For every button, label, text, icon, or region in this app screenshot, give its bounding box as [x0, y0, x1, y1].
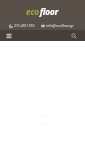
- button[interactable]: info@ecofloor.gr: [41, 23, 74, 28]
- staticText: info@ecofloor.gr: [46, 23, 74, 28]
- button[interactable]: Search: [69, 31, 78, 40]
- button[interactable]: Menu: [4, 31, 13, 40]
- button[interactable]: 211-4011010: [9, 23, 35, 28]
- staticText: 211-4011010: [14, 23, 35, 28]
- staticText: eco: [26, 6, 40, 17]
- staticText: floor: [40, 6, 59, 17]
